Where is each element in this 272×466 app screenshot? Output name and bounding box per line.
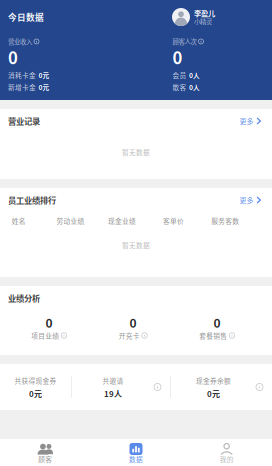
staticText: 共获得现金券 <box>14 376 56 385</box>
staticText: 0元 <box>38 70 49 80</box>
staticText: 暂无数据 <box>122 240 150 250</box>
staticText: 李盈儿 <box>194 8 215 18</box>
staticText: 19人 <box>104 388 122 399</box>
staticText: 我的 <box>220 454 234 464</box>
staticText: 散客 <box>172 82 186 92</box>
button[interactable]: 顾客 <box>0 439 91 466</box>
button[interactable]: 我的 <box>181 439 272 466</box>
staticText: 0元 <box>29 388 42 399</box>
button[interactable]: 更多 <box>239 114 261 128</box>
staticText: 今日数据 <box>8 11 44 23</box>
staticText: 现金业绩 <box>108 216 136 226</box>
staticText: 暂无数据 <box>122 147 150 157</box>
staticText: 新增卡金 <box>8 82 36 92</box>
staticText: 营业收入 <box>8 37 32 46</box>
staticText: 0 <box>45 314 52 331</box>
staticText: 会员 <box>172 70 186 80</box>
staticText: 开充卡 <box>119 331 140 340</box>
staticText: 小精灵 <box>194 17 212 26</box>
staticText: 共邀请 <box>102 376 123 385</box>
staticText: 劳动业绩 <box>56 216 84 226</box>
staticText: 0人 <box>189 82 200 92</box>
staticText: 客单价 <box>163 216 184 226</box>
staticText: 服务客数 <box>211 216 239 226</box>
staticText: 套餐销售 <box>199 331 227 340</box>
staticText: 更多 <box>239 195 253 205</box>
staticText: 0 <box>8 45 18 69</box>
staticText: 消耗卡金 <box>8 70 36 80</box>
staticText: 员工业绩排行 <box>8 194 56 206</box>
staticText: 0元 <box>207 388 220 399</box>
button[interactable]: 数据 <box>91 439 181 466</box>
staticText: 姓名 <box>12 216 26 226</box>
staticText: 0人 <box>189 70 200 80</box>
staticText: 顾客 <box>38 454 52 464</box>
staticText: 项目业绩 <box>31 331 59 340</box>
button[interactable]: 李盈儿 <box>172 8 215 26</box>
staticText: 0元 <box>38 82 49 92</box>
staticText: 营业记录 <box>8 115 40 127</box>
staticText: 0 <box>213 314 220 331</box>
staticText: 数据 <box>129 454 143 464</box>
staticText: 0 <box>172 45 182 69</box>
button[interactable]: 更多 <box>239 193 261 207</box>
staticText: 业绩分析 <box>8 292 40 304</box>
staticText: 更多 <box>239 116 253 126</box>
staticText: 顾客人次 <box>172 37 196 46</box>
staticText: 现金券余额 <box>196 376 231 385</box>
staticText: 0 <box>129 314 136 331</box>
